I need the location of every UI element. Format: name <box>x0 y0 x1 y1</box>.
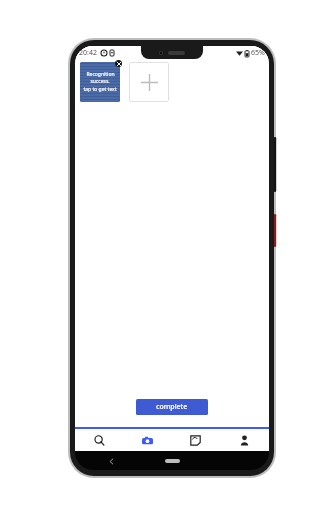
button[interactable]: Camera <box>123 429 171 451</box>
staticText: success. <box>90 78 110 85</box>
staticText: complete <box>156 402 188 412</box>
button[interactable]: Documents <box>171 429 220 451</box>
button[interactable]: Back <box>105 455 117 467</box>
button[interactable]: Remove page <box>115 60 122 67</box>
staticText: tap to get text <box>83 86 117 93</box>
button[interactable]: Search <box>75 429 123 451</box>
staticText: Recognition <box>86 71 115 78</box>
button[interactable]: Recognition <box>80 60 122 102</box>
button[interactable]: Add page <box>129 62 169 102</box>
button[interactable]: complete <box>136 399 208 415</box>
button[interactable]: Home <box>165 459 180 463</box>
button[interactable]: Profile <box>220 429 269 451</box>
staticText: 65% <box>251 48 265 58</box>
staticText: 20:42 <box>79 48 97 58</box>
